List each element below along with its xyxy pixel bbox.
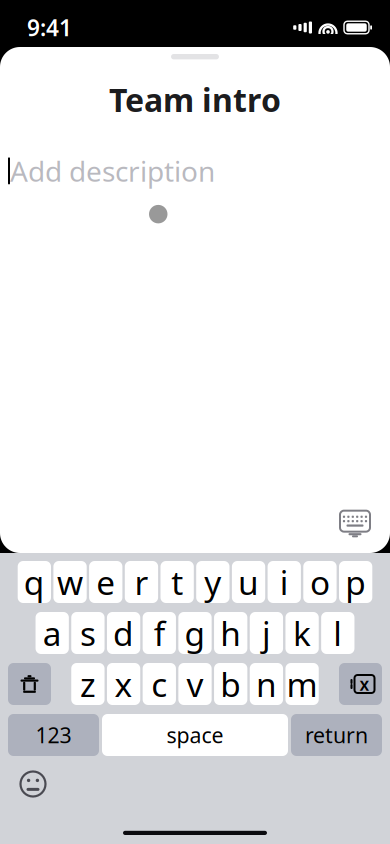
button[interactable]: Emoji (16, 767, 50, 801)
staticText: v (186, 662, 203, 706)
staticText: r (134, 560, 148, 604)
button[interactable]: q (18, 561, 51, 603)
button[interactable]: v (178, 663, 212, 705)
button[interactable]: s (71, 612, 104, 654)
button[interactable]: g (178, 612, 212, 654)
button[interactable]: t (160, 561, 194, 603)
button[interactable]: j (250, 612, 283, 654)
button[interactable]: y (196, 561, 229, 603)
button[interactable]: m (285, 663, 319, 705)
staticText: x (115, 662, 133, 706)
staticText: return (305, 721, 368, 749)
staticText: 123 (35, 721, 71, 749)
button[interactable]: r (125, 561, 158, 603)
staticText: p (345, 560, 366, 604)
staticText: Team intro (109, 78, 281, 121)
button[interactable]: Hide keyboard (334, 503, 376, 545)
staticText: a (43, 611, 62, 655)
staticText: space (166, 721, 223, 749)
staticText: Add description (10, 152, 215, 189)
button[interactable]: h (214, 612, 247, 654)
button[interactable]: c (143, 663, 176, 705)
button[interactable]: x (107, 663, 140, 705)
staticText: i (280, 560, 289, 604)
staticText: w (57, 560, 83, 604)
staticText: q (24, 560, 45, 604)
button[interactable]: o (303, 561, 337, 603)
staticText: o (310, 560, 330, 604)
button[interactable]: f (143, 612, 176, 654)
staticText: j (262, 611, 271, 655)
staticText: k (293, 611, 311, 655)
button[interactable]: i (268, 561, 301, 603)
button[interactable]: n (250, 663, 283, 705)
button[interactable]: 123 (8, 714, 99, 756)
staticText: t (171, 560, 183, 604)
button[interactable]: l (321, 612, 354, 654)
button[interactable]: a (35, 612, 69, 654)
staticText: l (333, 611, 342, 655)
staticText: y (204, 560, 221, 604)
staticText: x (359, 672, 369, 695)
button[interactable]: u (232, 561, 265, 603)
button[interactable]: space (102, 714, 288, 756)
button[interactable]: e (89, 561, 122, 603)
button[interactable]: return (291, 714, 382, 756)
staticText: m (287, 662, 318, 706)
staticText: h (220, 611, 241, 655)
staticText: u (238, 560, 259, 604)
button[interactable]: w (53, 561, 87, 603)
button[interactable]: d (107, 612, 140, 654)
staticText: s (80, 611, 96, 655)
staticText: g (184, 611, 205, 655)
button[interactable]: z (71, 663, 104, 705)
staticText: d (113, 611, 134, 655)
staticText: n (256, 662, 277, 706)
button[interactable]: p (339, 561, 372, 603)
button[interactable]: k (285, 612, 319, 654)
staticText: z (80, 662, 96, 706)
button[interactable]: b (214, 663, 247, 705)
staticText: 9:41 (27, 12, 72, 42)
staticText: e (96, 560, 115, 604)
staticText: f (154, 611, 165, 655)
staticText: c (151, 662, 167, 706)
button[interactable]: Shift (8, 663, 51, 705)
button[interactable]: Delete (339, 663, 382, 705)
staticText: b (220, 662, 241, 706)
button[interactable]: Add description (8, 153, 382, 189)
